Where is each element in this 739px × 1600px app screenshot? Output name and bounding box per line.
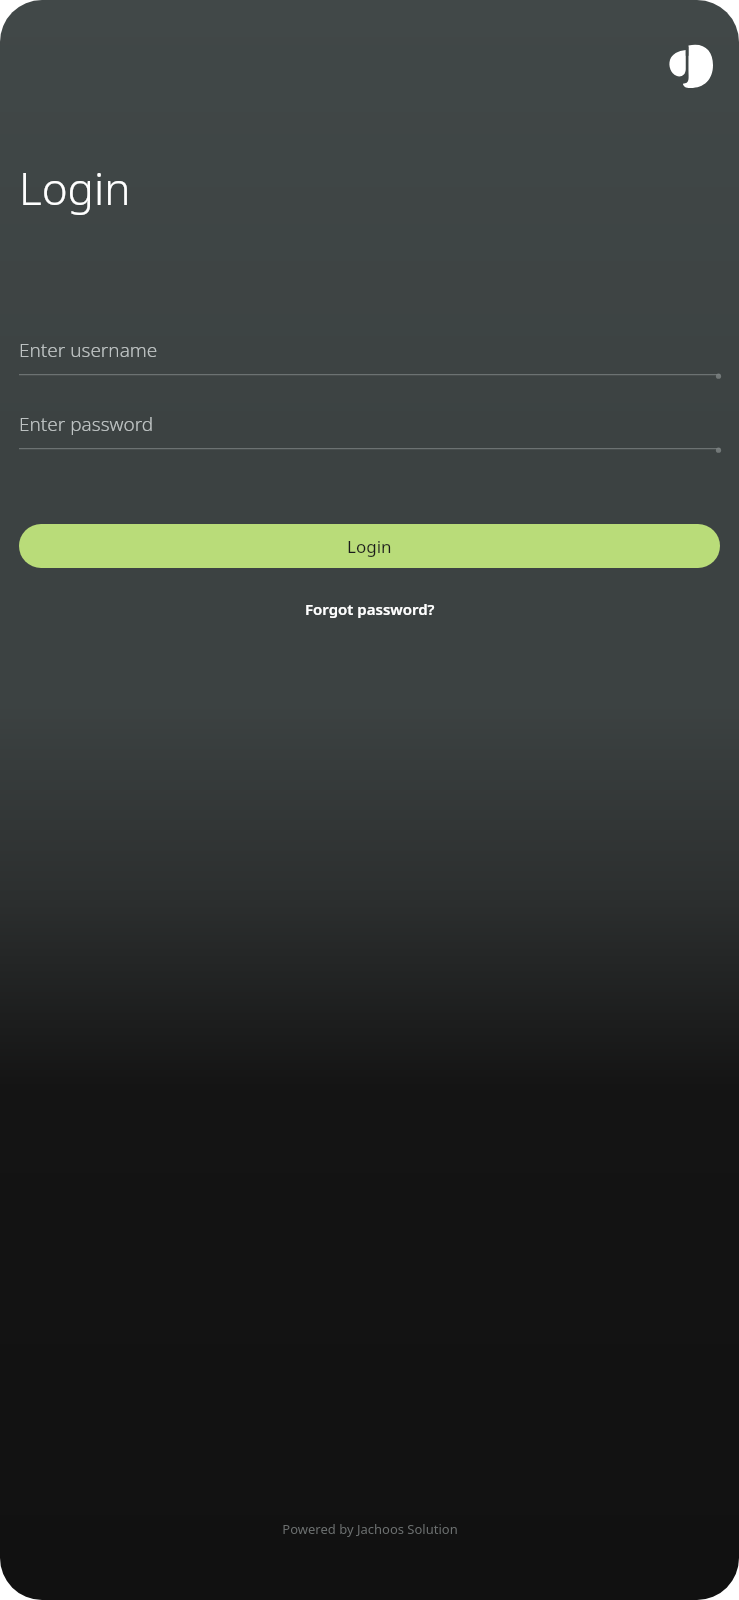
- button[interactable]: Login: [19, 524, 720, 568]
- staticText: Login: [19, 158, 131, 218]
- staticText: Forgot password?: [305, 599, 435, 619]
- staticText: Login: [347, 535, 392, 558]
- button[interactable]: Enter password: [19, 406, 720, 452]
- button[interactable]: Forgot password?: [295, 592, 445, 626]
- staticText: Powered by Jachoos Solution: [282, 1520, 458, 1538]
- button[interactable]: Enter username: [19, 332, 720, 378]
- staticText: Enter password: [19, 411, 154, 437]
- other: Jachoos logo: [668, 42, 713, 88]
- staticText: Enter username: [19, 337, 158, 363]
